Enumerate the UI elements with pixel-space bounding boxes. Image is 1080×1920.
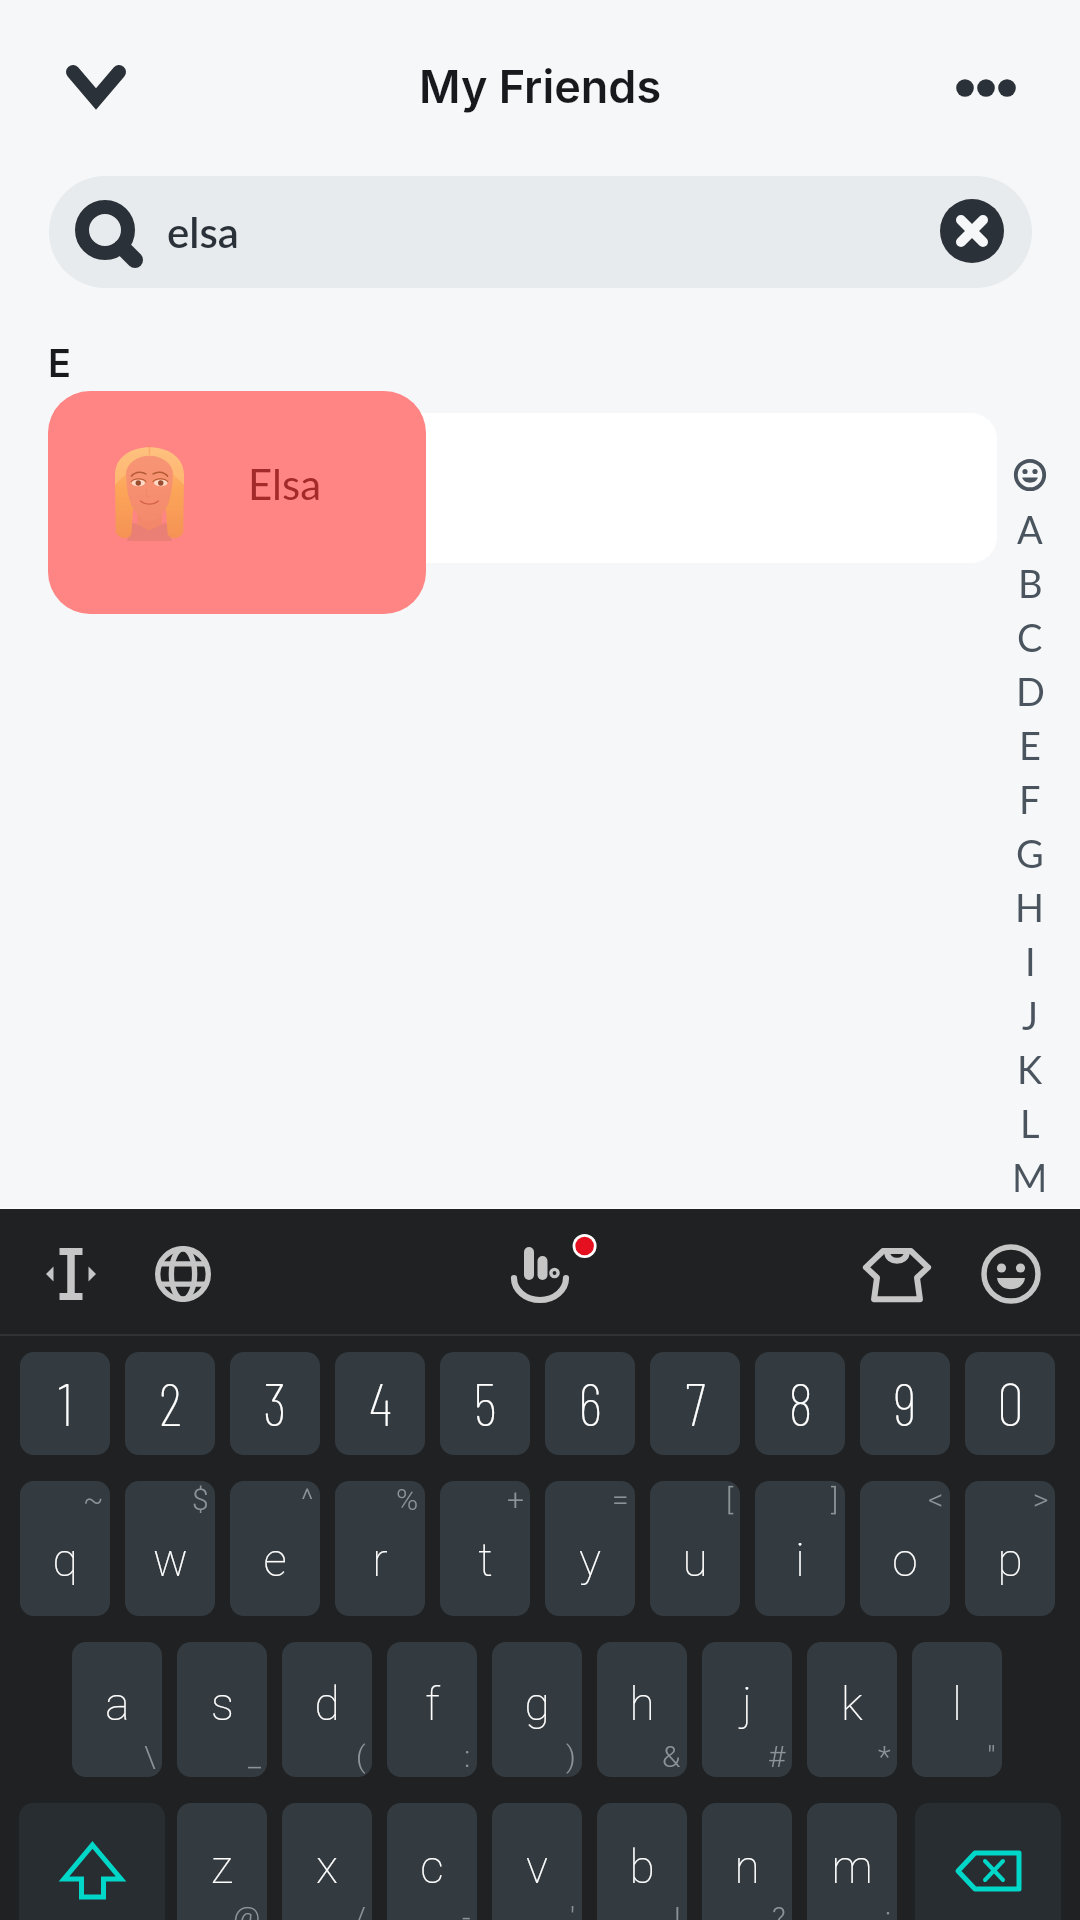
button[interactable]: Emoji	[974, 1237, 1048, 1311]
staticText: M	[1012, 1154, 1048, 1200]
button[interactable]: 7	[650, 1352, 740, 1455]
button[interactable]: !	[597, 1803, 687, 1920]
staticText: g	[524, 1677, 550, 1731]
staticText: I	[1025, 938, 1036, 984]
staticText: ]	[831, 1482, 839, 1517]
button[interactable]: Cursor control	[34, 1237, 108, 1311]
button[interactable]: %	[335, 1481, 425, 1616]
staticText: H	[1015, 884, 1045, 930]
button[interactable]: More options	[930, 52, 1030, 124]
button[interactable]: 2	[125, 1352, 215, 1455]
button[interactable]: Backspace	[915, 1803, 1061, 1920]
staticText: '	[570, 1900, 576, 1920]
staticText: e	[263, 1533, 287, 1587]
staticText: D	[1016, 668, 1045, 714]
button[interactable]: ]	[755, 1481, 845, 1616]
staticText: L	[1020, 1100, 1040, 1146]
button[interactable]: (	[282, 1642, 372, 1777]
button[interactable]: [	[650, 1481, 740, 1616]
staticText: G	[1016, 830, 1044, 876]
staticText: h	[629, 1677, 655, 1731]
staticText: &	[662, 1739, 681, 1774]
staticText: l	[952, 1677, 962, 1731]
button[interactable]: >	[965, 1481, 1055, 1616]
button[interactable]: -	[387, 1803, 477, 1920]
button[interactable]: ~	[20, 1481, 110, 1616]
button[interactable]: Elsa	[48, 391, 426, 614]
staticText: Elsa	[248, 459, 322, 509]
button[interactable]: $	[125, 1481, 215, 1616]
staticText: ~	[83, 1482, 104, 1517]
staticText: r	[372, 1533, 388, 1587]
button[interactable]: _	[177, 1642, 267, 1777]
button[interactable]: Keyboard menu	[500, 1232, 600, 1332]
staticText: E	[48, 340, 72, 386]
button[interactable]: \	[72, 1642, 162, 1777]
staticText: @	[233, 1900, 261, 1920]
staticText: w	[153, 1533, 188, 1587]
staticText: "	[987, 1739, 996, 1774]
staticText: 7	[685, 1366, 706, 1438]
staticText: E	[1019, 722, 1041, 768]
button[interactable]: )	[492, 1642, 582, 1777]
button[interactable]: Shift	[19, 1803, 165, 1920]
button[interactable]: Change language	[146, 1237, 220, 1311]
staticText: %	[396, 1482, 419, 1517]
staticText: d	[314, 1677, 340, 1731]
button[interactable]: 3	[230, 1352, 320, 1455]
staticText: p	[997, 1533, 1023, 1587]
button[interactable]: +	[440, 1481, 530, 1616]
staticText: u	[682, 1533, 708, 1587]
staticText: m	[831, 1840, 873, 1894]
staticText: v	[526, 1840, 548, 1894]
button[interactable]: :	[387, 1642, 477, 1777]
button[interactable]: Clear search	[940, 199, 1004, 263]
button[interactable]: elsa	[49, 176, 1032, 288]
button[interactable]: 8	[755, 1352, 845, 1455]
staticText: n	[734, 1840, 760, 1894]
staticText: 1	[58, 1366, 73, 1438]
staticText: q	[52, 1533, 78, 1587]
staticText: 9	[893, 1366, 917, 1438]
button[interactable]: ^	[230, 1481, 320, 1616]
staticText: $	[192, 1482, 209, 1517]
button[interactable]: 6	[545, 1352, 635, 1455]
button[interactable]: ;	[807, 1803, 897, 1920]
staticText: #	[768, 1739, 786, 1774]
staticText: elsa	[167, 207, 239, 257]
staticText: :	[464, 1739, 471, 1774]
staticText: ^	[301, 1482, 314, 1517]
button[interactable]: /	[282, 1803, 372, 1920]
staticText: 0	[997, 1366, 1024, 1438]
button[interactable]: Collapse	[45, 52, 147, 124]
button[interactable]: ?	[702, 1803, 792, 1920]
button[interactable]: 4	[335, 1352, 425, 1455]
button[interactable]: 1	[20, 1352, 110, 1455]
staticText: (	[356, 1739, 366, 1774]
staticText: =	[612, 1482, 629, 1517]
button[interactable]: #	[702, 1642, 792, 1777]
staticText: i	[795, 1533, 805, 1587]
button[interactable]: '	[492, 1803, 582, 1920]
button[interactable]: <	[860, 1481, 950, 1616]
staticText: c	[420, 1840, 444, 1894]
button[interactable]: Themes	[860, 1237, 934, 1311]
button[interactable]: 9	[860, 1352, 950, 1455]
button[interactable]: =	[545, 1481, 635, 1616]
staticText: 2	[159, 1366, 182, 1438]
staticText: z	[211, 1840, 233, 1894]
button[interactable]: "	[912, 1642, 1002, 1777]
staticText: ;	[885, 1900, 891, 1920]
staticText: f	[425, 1677, 440, 1731]
button[interactable]: @	[177, 1803, 267, 1920]
staticText: +	[507, 1482, 524, 1517]
staticText: A	[1017, 506, 1043, 552]
staticText: \	[144, 1739, 156, 1774]
staticText: t	[478, 1533, 493, 1587]
button[interactable]: *	[807, 1642, 897, 1777]
button[interactable]: 0	[965, 1352, 1055, 1455]
staticText: *	[878, 1739, 891, 1774]
button[interactable]: 5	[440, 1352, 530, 1455]
button[interactable]: &	[597, 1642, 687, 1777]
staticText: )	[566, 1739, 576, 1774]
